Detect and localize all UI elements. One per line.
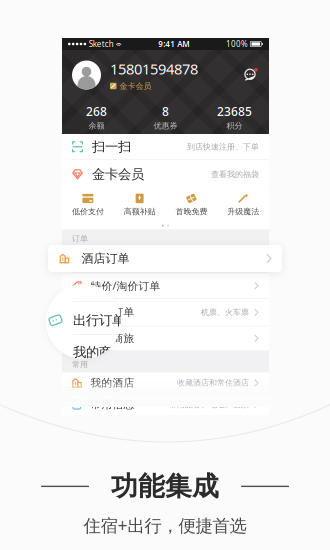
staticText: 到店快速注册、下单 [187,142,259,152]
staticText: 出行订单 [73,312,125,328]
staticText: 金卡会员 [119,81,151,91]
staticText: 优惠券 [153,121,177,131]
button[interactable]: 出行订单 [62,299,269,326]
staticText: 首晚免费 [175,207,207,216]
staticText: 积分 [226,121,242,131]
staticText: 常用 [72,360,88,369]
button[interactable]: 金卡会员 [62,160,269,189]
button[interactable]: 首晚免费 [165,194,217,216]
staticText: 我的酒店 [90,376,134,389]
staticText: 酒店订单 [90,253,134,266]
staticText: Sketch [89,39,114,49]
staticText: 订单 [72,234,88,244]
staticText: 9:41 AM [158,39,189,49]
button[interactable]: 扫一扫 [62,134,269,159]
staticText: 100% [226,39,248,49]
staticText: 查看我的福袋 [211,169,259,179]
button[interactable]: 8 [131,103,200,131]
staticText: 余额 [88,121,104,131]
staticText: 高额补贴 [124,207,156,216]
button[interactable]: 酒店订单 [48,245,282,272]
staticText: 机票、火车票 [201,307,249,317]
button[interactable]: 消息 [242,66,259,83]
staticText: 15801594878 [110,59,198,79]
staticText: 常用旅客、地址、发票 [169,400,249,409]
button[interactable]: 高额补贴 [114,194,166,216]
staticText: 收藏酒店和常住酒店 [177,378,249,388]
button[interactable]: 我的商旅 [62,326,269,350]
staticText: 特价/淘价订单 [90,279,160,293]
staticText: 功能集成 [111,470,219,503]
staticText: 我的商旅 [73,344,125,360]
button[interactable]: 268 [62,103,131,131]
staticText: 升级魔法 [227,207,259,216]
staticText: 扫一扫 [92,139,131,155]
button[interactable]: 头像 [72,60,101,89]
button[interactable]: 我的酒店 [62,372,269,393]
staticText: 23685 [217,103,252,119]
staticText: 酒店订单 [81,251,129,266]
staticText: 金卡会员 [92,166,144,183]
staticText: 8 [162,103,169,119]
button[interactable]: 23685 [200,103,269,131]
button[interactable]: 低价支付 [62,194,114,216]
button[interactable]: 酒店订单 [62,247,269,273]
staticText: 住宿+出行，便捷首选 [83,514,246,537]
staticText: 我的商旅 [90,332,134,345]
staticText: 低价支付 [72,207,104,216]
staticText: 出行订单 [90,306,134,319]
button[interactable]: 常用信息 [62,394,269,415]
staticText: 常用信息 [90,398,134,411]
button[interactable]: 升级魔法 [217,194,269,216]
staticText: 268 [86,103,107,119]
button[interactable]: 特价/淘价订单 [62,273,269,298]
